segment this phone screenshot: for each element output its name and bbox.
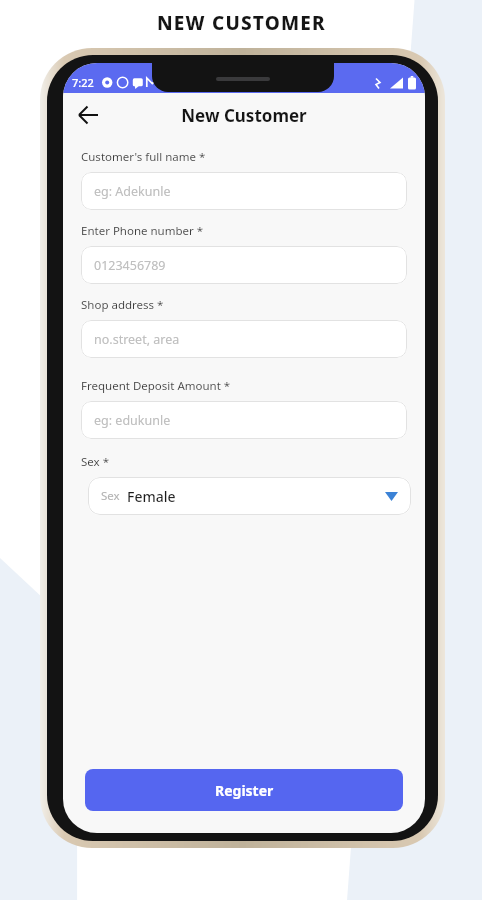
staticText: Customer's full name * [81,149,206,165]
staticText: Female [127,487,176,506]
button[interactable]: eg: Adekunle [81,172,407,210]
staticText: Enter Phone number * [81,223,204,239]
button[interactable]: eg: edukunle [81,401,407,439]
staticText: NEW CUSTOMER [157,10,326,36]
button[interactable]: Back [68,95,108,135]
staticText: Sex * [81,454,109,470]
staticText: New Customer [181,104,307,127]
staticText: Shop address * [81,297,164,313]
staticText: no.street, area [94,331,180,348]
staticText: 0123456789 [94,257,166,274]
staticText: eg: edukunle [94,412,171,429]
button[interactable]: no.street, area [81,320,407,358]
staticText: Register [215,781,274,800]
staticText: Sex [101,488,120,504]
staticText: Frequent Deposit Amount * [81,378,231,394]
staticText: 7:22 [72,75,94,90]
staticText: eg: Adekunle [94,183,171,200]
button[interactable]: 0123456789 [81,246,407,284]
button[interactable]: Register [85,769,403,811]
button[interactable]: Sex [88,477,411,515]
